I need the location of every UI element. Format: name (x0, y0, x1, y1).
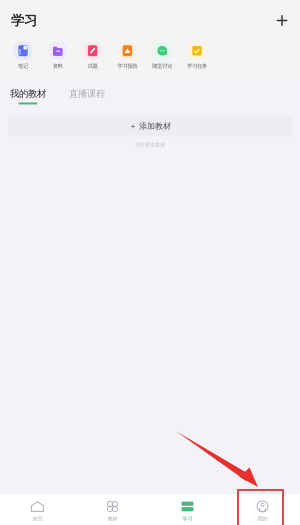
button[interactable]: ＋ (8, 115, 292, 136)
staticText: 学习 (11, 12, 37, 29)
button[interactable]: 笔记 (6, 41, 40, 70)
staticText: 没有更多数据 (135, 141, 165, 148)
staticText: 试题 (88, 63, 98, 69)
staticText: 添加教材 (139, 121, 171, 131)
button[interactable]: 随堂讨论 (145, 41, 180, 70)
staticText: 首页 (32, 515, 42, 522)
button[interactable]: 资料 (40, 41, 75, 70)
button[interactable]: 教材 (75, 501, 150, 522)
staticText: 直播课程 (69, 88, 105, 99)
staticText: ＋ (129, 121, 137, 131)
button[interactable]: 学习任务 (180, 41, 214, 70)
button[interactable]: 我的教材 (10, 88, 46, 104)
staticText: 笔记 (18, 63, 28, 69)
button[interactable]: 添加 (272, 10, 292, 30)
button[interactable]: 直播课程 (69, 88, 105, 104)
staticText: 资料 (53, 63, 63, 69)
staticText: 随堂讨论 (152, 63, 172, 69)
button[interactable]: 试题 (75, 41, 110, 70)
button[interactable]: 我的 (225, 501, 300, 522)
button[interactable]: 学习 (150, 501, 225, 522)
staticText: 学习 (182, 515, 192, 522)
button[interactable]: 学习报告 (110, 41, 145, 70)
staticText: 我的教材 (10, 88, 46, 99)
staticText: 教材 (107, 515, 117, 522)
button[interactable]: 首页 (0, 501, 75, 522)
staticText: 学习任务 (187, 63, 207, 69)
staticText: 学习报告 (117, 63, 137, 69)
staticText: 我的 (257, 515, 267, 522)
